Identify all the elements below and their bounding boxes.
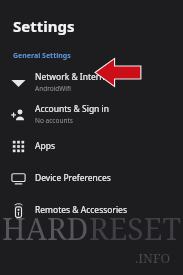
button[interactable]: Apps [0, 130, 183, 162]
staticText: HARD [2, 208, 89, 249]
staticText: Device Preferences [35, 172, 111, 184]
button[interactable]: Network & Internet [0, 66, 183, 98]
staticText: Apps [35, 140, 55, 152]
staticText: Accounts & Sign in [35, 103, 110, 115]
button[interactable]: Device Preferences [0, 162, 183, 194]
button[interactable]: Remotes & Accessories [0, 194, 183, 226]
staticText: General Settings [13, 51, 71, 61]
staticText: No accounts [35, 116, 73, 125]
staticText: Remotes & Accessories [35, 204, 127, 216]
staticText: RESET [89, 208, 181, 249]
button[interactable]: Accounts & Sign in [0, 98, 183, 130]
staticText: AndroidWifi [35, 84, 71, 93]
staticText: Settings [13, 16, 75, 36]
other: Pointer arrow [96, 59, 141, 86]
staticText: Network & Internet [35, 71, 113, 83]
staticText: .INFO [135, 249, 171, 267]
